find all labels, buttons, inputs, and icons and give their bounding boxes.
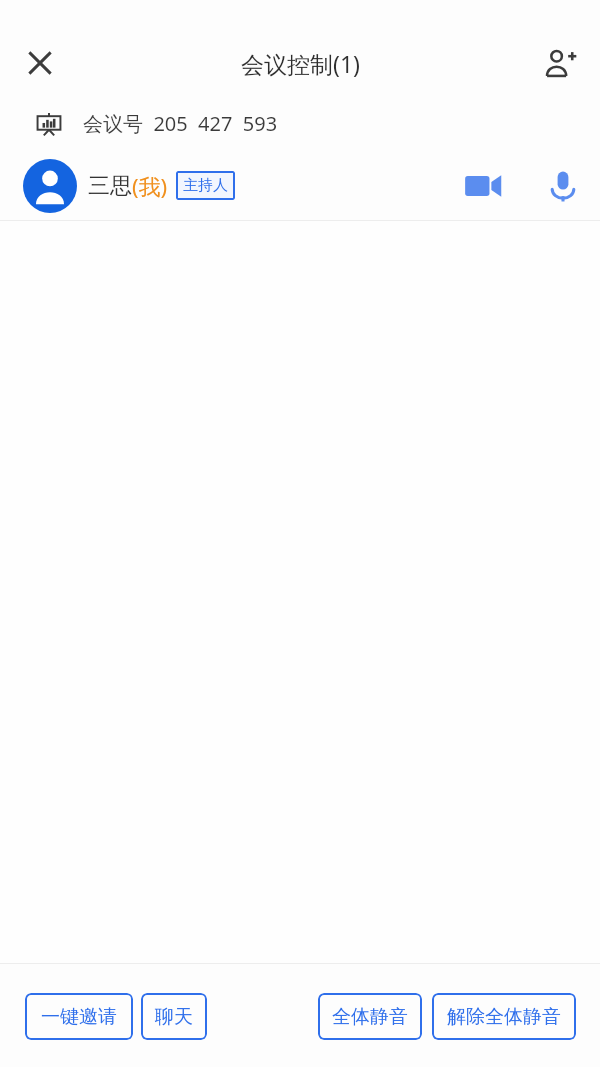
staticText: 会议控制(1) <box>241 48 360 79</box>
staticText: 聊天 <box>155 1005 193 1029</box>
staticText: 会议号 205 427 593 <box>83 110 278 137</box>
staticText: 一键邀请 <box>41 1005 117 1029</box>
staticText: 全体静音 <box>332 1005 408 1029</box>
button[interactable]: 三思 <box>0 151 600 220</box>
button[interactable]: 一键邀请 <box>25 993 133 1040</box>
staticText: (我) <box>132 171 168 201</box>
button[interactable]: Microphone on <box>537 160 589 212</box>
staticText: 主持人 <box>183 176 228 195</box>
button[interactable]: Close <box>12 35 68 91</box>
button[interactable]: Add participant <box>532 35 588 91</box>
staticText: 三思 <box>88 172 132 200</box>
button[interactable]: 解除全体静音 <box>432 993 576 1040</box>
button[interactable]: 全体静音 <box>318 993 422 1040</box>
button[interactable]: 聊天 <box>141 993 207 1040</box>
staticText: 解除全体静音 <box>447 1005 561 1029</box>
button[interactable]: 会议号 205 427 593 <box>0 96 600 151</box>
button[interactable]: Camera on <box>457 160 509 212</box>
